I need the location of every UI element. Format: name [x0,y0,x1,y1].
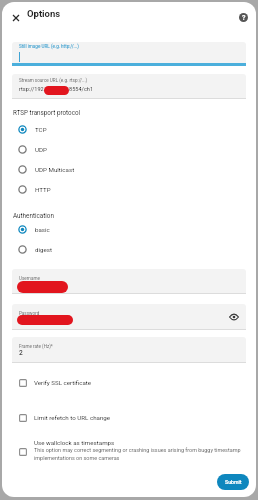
staticText: Use wallclock as timestamps [34,439,115,446]
button[interactable] [12,374,246,392]
staticText: Stream source URL (e.g. rtsp://...) [19,78,88,83]
staticText: Authentication [13,212,54,219]
button[interactable] [12,443,246,461]
staticText: Submit [225,479,242,485]
staticText: 8554/ch1 [69,86,94,93]
button[interactable] [12,74,246,99]
staticText: UDP Multicast [35,166,75,173]
button[interactable]: Show password [228,311,240,323]
staticText: rtsp://192. [19,86,46,93]
staticText: Frame rate (Hz)* [19,344,53,349]
staticText: This option may correct segmenting or cr… [34,447,246,461]
button[interactable]: UDP [12,139,246,159]
staticText: RTSP transport protocol [13,109,81,116]
staticText: 2 [19,349,23,357]
button[interactable]: digest [12,239,246,259]
staticText: Password [19,311,40,316]
button[interactable]: HTTP [12,179,246,199]
staticText: Limit refetch to URL change [34,414,111,421]
staticText: Options [27,8,61,19]
button[interactable]: Close [7,9,24,26]
staticText: Still image URL (e.g. http://...) [19,44,79,49]
button[interactable]: Help [234,8,252,26]
button[interactable] [12,337,246,363]
staticText: digest [35,246,52,253]
staticText: HTTP [35,186,51,193]
button[interactable]: UDP Multicast [12,159,246,179]
button[interactable]: TCP [12,119,246,139]
staticText: ? [242,14,246,22]
button[interactable] [12,42,246,66]
button[interactable] [12,269,246,294]
staticText: UDP [35,146,47,153]
button[interactable]: Show password [12,304,246,330]
button[interactable]: basic [12,219,246,239]
staticText: basic [35,226,50,233]
staticText: Verify SSL certificate [34,379,92,386]
button[interactable] [12,409,246,427]
staticText: Username [19,276,40,281]
button[interactable]: Submit [217,474,249,490]
staticText: TCP [35,126,47,133]
